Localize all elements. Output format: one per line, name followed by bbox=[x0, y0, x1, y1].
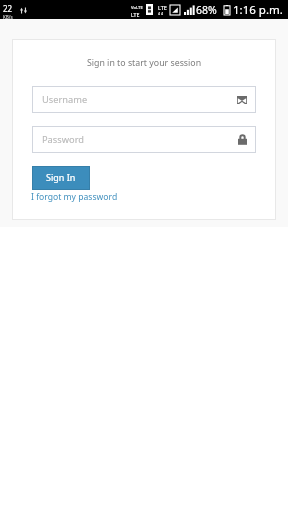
button[interactable]: Username bbox=[32, 86, 256, 113]
staticText: 68% bbox=[196, 3, 217, 17]
button[interactable]: I forgot my password bbox=[31, 191, 118, 203]
staticText: LTE bbox=[131, 11, 140, 18]
button[interactable]: Password bbox=[32, 126, 256, 153]
staticText: KB/s bbox=[3, 14, 13, 20]
staticText: 4 4 bbox=[158, 11, 164, 16]
other: Email bbox=[237, 96, 247, 104]
staticText: 1:16 p.m. bbox=[233, 2, 283, 18]
staticText: VoLTE bbox=[131, 5, 143, 11]
staticText: LTE bbox=[158, 4, 167, 11]
staticText: 22 bbox=[3, 3, 13, 14]
staticText: Sign in to start your session bbox=[32, 57, 256, 69]
staticText: Password bbox=[42, 133, 85, 146]
other: Password bbox=[238, 135, 247, 145]
button[interactable]: Sign In bbox=[32, 166, 90, 190]
staticText: Sign In bbox=[46, 171, 76, 183]
staticText: Username bbox=[42, 93, 88, 106]
